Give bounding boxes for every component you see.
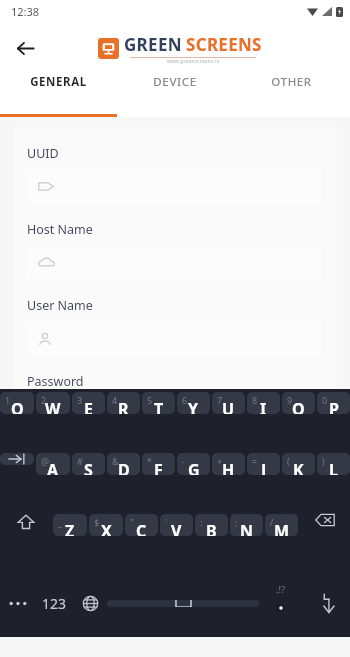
staticText: DEVICE <box>153 74 197 90</box>
staticText: Host Name <box>27 221 93 238</box>
staticText: UUID <box>27 145 59 162</box>
button[interactable]: More options <box>0 601 36 606</box>
staticText: S <box>84 459 93 475</box>
staticText: Z <box>65 520 75 536</box>
button[interactable]: $ <box>89 514 123 536</box>
staticText: F <box>154 459 163 475</box>
button[interactable]: @ <box>36 453 70 475</box>
button[interactable]: 3 <box>72 392 105 414</box>
button[interactable]: _ <box>53 514 87 536</box>
button[interactable]: Backspace <box>300 513 350 527</box>
button[interactable]: # <box>72 453 105 475</box>
staticText: 5 <box>147 394 153 406</box>
staticText: V <box>171 520 182 536</box>
staticText: ' <box>165 516 168 528</box>
staticText: Q <box>11 398 24 414</box>
button[interactable]: 9 <box>282 392 315 414</box>
staticText: E <box>84 398 93 414</box>
staticText: 12:38 <box>11 4 40 19</box>
button[interactable]: 5 <box>142 392 175 414</box>
staticText: SCREENS <box>186 33 262 56</box>
button[interactable]: ( <box>282 453 315 475</box>
staticText: ; <box>235 516 238 528</box>
staticText: J <box>261 459 267 475</box>
staticText: 123 <box>42 594 67 613</box>
staticText: P <box>329 398 339 414</box>
staticText: C <box>136 520 147 536</box>
staticText: L <box>329 459 338 475</box>
button[interactable]: Back <box>8 31 42 65</box>
button[interactable]: = <box>247 453 280 475</box>
staticText: # <box>77 455 83 467</box>
button[interactable]: 8 <box>247 392 280 414</box>
staticText: B <box>206 520 217 536</box>
staticText: 1 <box>5 394 11 406</box>
staticText: www.greenscreens.io <box>167 58 220 64</box>
staticText: 8 <box>252 394 258 406</box>
button[interactable]: 123 <box>36 574 73 632</box>
button[interactable]: Tab <box>0 453 34 465</box>
button[interactable]: 0 <box>317 392 350 414</box>
button[interactable]: DEVICE <box>116 74 233 90</box>
staticText: @ <box>41 455 50 467</box>
staticText: H <box>222 459 235 475</box>
button[interactable]: & <box>107 453 140 475</box>
button[interactable]: ' <box>160 514 193 536</box>
button[interactable]: - <box>177 453 210 475</box>
button[interactable]: : <box>195 514 228 536</box>
staticText: 0 <box>322 394 328 406</box>
button[interactable]: ; <box>230 514 263 536</box>
staticText: 2 <box>41 394 47 406</box>
staticText: Password <box>27 373 84 389</box>
button[interactable]: 7 <box>212 392 245 414</box>
button[interactable]: 2 <box>36 392 70 414</box>
button[interactable]: Shift <box>0 513 51 531</box>
staticText: = <box>252 455 258 467</box>
staticText: ( <box>287 455 290 467</box>
button[interactable]: * <box>142 453 175 475</box>
button[interactable]: 6 <box>177 392 210 414</box>
staticText: O <box>292 398 305 414</box>
staticText: T <box>154 398 164 414</box>
button[interactable]: Period <box>259 574 303 632</box>
staticText: " <box>130 516 134 528</box>
staticText: A <box>47 459 59 475</box>
staticText: U <box>222 398 235 414</box>
staticText: 9 <box>287 394 293 406</box>
staticText: GREEN <box>124 33 182 56</box>
button[interactable]: + <box>212 453 245 475</box>
button[interactable]: Space <box>107 600 259 607</box>
staticText: G <box>188 459 200 475</box>
button[interactable]: GENERAL <box>0 74 116 90</box>
staticText: _ <box>58 516 62 528</box>
button[interactable]: ) <box>317 453 350 475</box>
staticText: X <box>101 520 112 536</box>
staticText: D <box>118 459 130 475</box>
staticText: M <box>274 520 290 536</box>
staticText: & <box>112 455 119 467</box>
staticText: Y <box>188 398 199 414</box>
button[interactable]: OTHER <box>233 74 350 90</box>
staticText: I <box>260 398 267 414</box>
button[interactable] <box>27 246 322 279</box>
staticText: 6 <box>182 394 188 406</box>
button[interactable]: Change language <box>73 595 107 612</box>
staticText: $ <box>94 516 100 528</box>
button[interactable]: 4 <box>107 392 140 414</box>
staticText: 7 <box>217 394 223 406</box>
staticText: K <box>293 459 304 475</box>
button[interactable]: / <box>265 514 298 536</box>
staticText: - <box>182 455 185 467</box>
staticText: : <box>200 516 203 528</box>
button[interactable]: " <box>125 514 158 536</box>
staticText: + <box>217 455 223 467</box>
staticText: * <box>147 455 152 467</box>
staticText: GENERAL <box>30 74 87 90</box>
button[interactable]: 1 <box>0 392 34 414</box>
staticText: 3 <box>77 394 83 406</box>
staticText: User Name <box>27 297 93 314</box>
staticText: 4 <box>112 394 118 406</box>
button[interactable]: Hide keyboard <box>303 593 350 614</box>
